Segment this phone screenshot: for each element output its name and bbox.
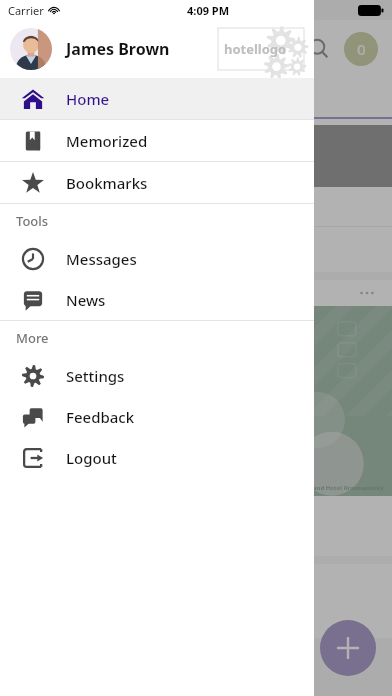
button[interactable]: Bookmarks xyxy=(0,162,314,203)
staticText: Grand Hotel Krasnapolsky xyxy=(306,484,384,492)
button[interactable]: Search xyxy=(304,34,334,64)
staticText: 4:09 PM xyxy=(187,3,230,18)
staticText: Comment xyxy=(16,237,97,260)
button[interactable]: 0 xyxy=(344,32,378,66)
staticText: 1 comments xyxy=(16,197,98,216)
button[interactable]: Memorized xyxy=(0,120,314,161)
button[interactable]: Messages xyxy=(0,238,314,279)
button[interactable]: News xyxy=(0,279,314,320)
staticText: News xyxy=(66,290,106,310)
button[interactable]: Settings xyxy=(0,355,314,396)
staticText: hotellogo xyxy=(224,40,287,58)
staticText: Memorized xyxy=(66,131,148,151)
button[interactable]: Logout xyxy=(0,437,314,478)
button[interactable]: James Brown xyxy=(0,20,314,78)
button[interactable]: Add xyxy=(320,620,376,676)
staticText: Messages xyxy=(66,249,137,269)
button[interactable]: Feedback xyxy=(0,396,314,437)
button[interactable]: Home xyxy=(0,78,314,119)
staticText: Settings xyxy=(66,366,125,386)
staticText: Bookmarks xyxy=(66,173,148,193)
staticText: Carrier xyxy=(8,3,44,18)
staticText: Tools xyxy=(16,212,49,230)
staticText: Home xyxy=(66,89,110,109)
staticText: More xyxy=(16,329,49,347)
button[interactable]: More options xyxy=(356,282,378,304)
staticText: Announcements xyxy=(16,86,150,109)
staticText: James Brown xyxy=(66,38,170,60)
staticText: Logout xyxy=(66,448,117,468)
staticText: 0 xyxy=(357,39,366,59)
staticText: Feedback xyxy=(66,407,135,427)
